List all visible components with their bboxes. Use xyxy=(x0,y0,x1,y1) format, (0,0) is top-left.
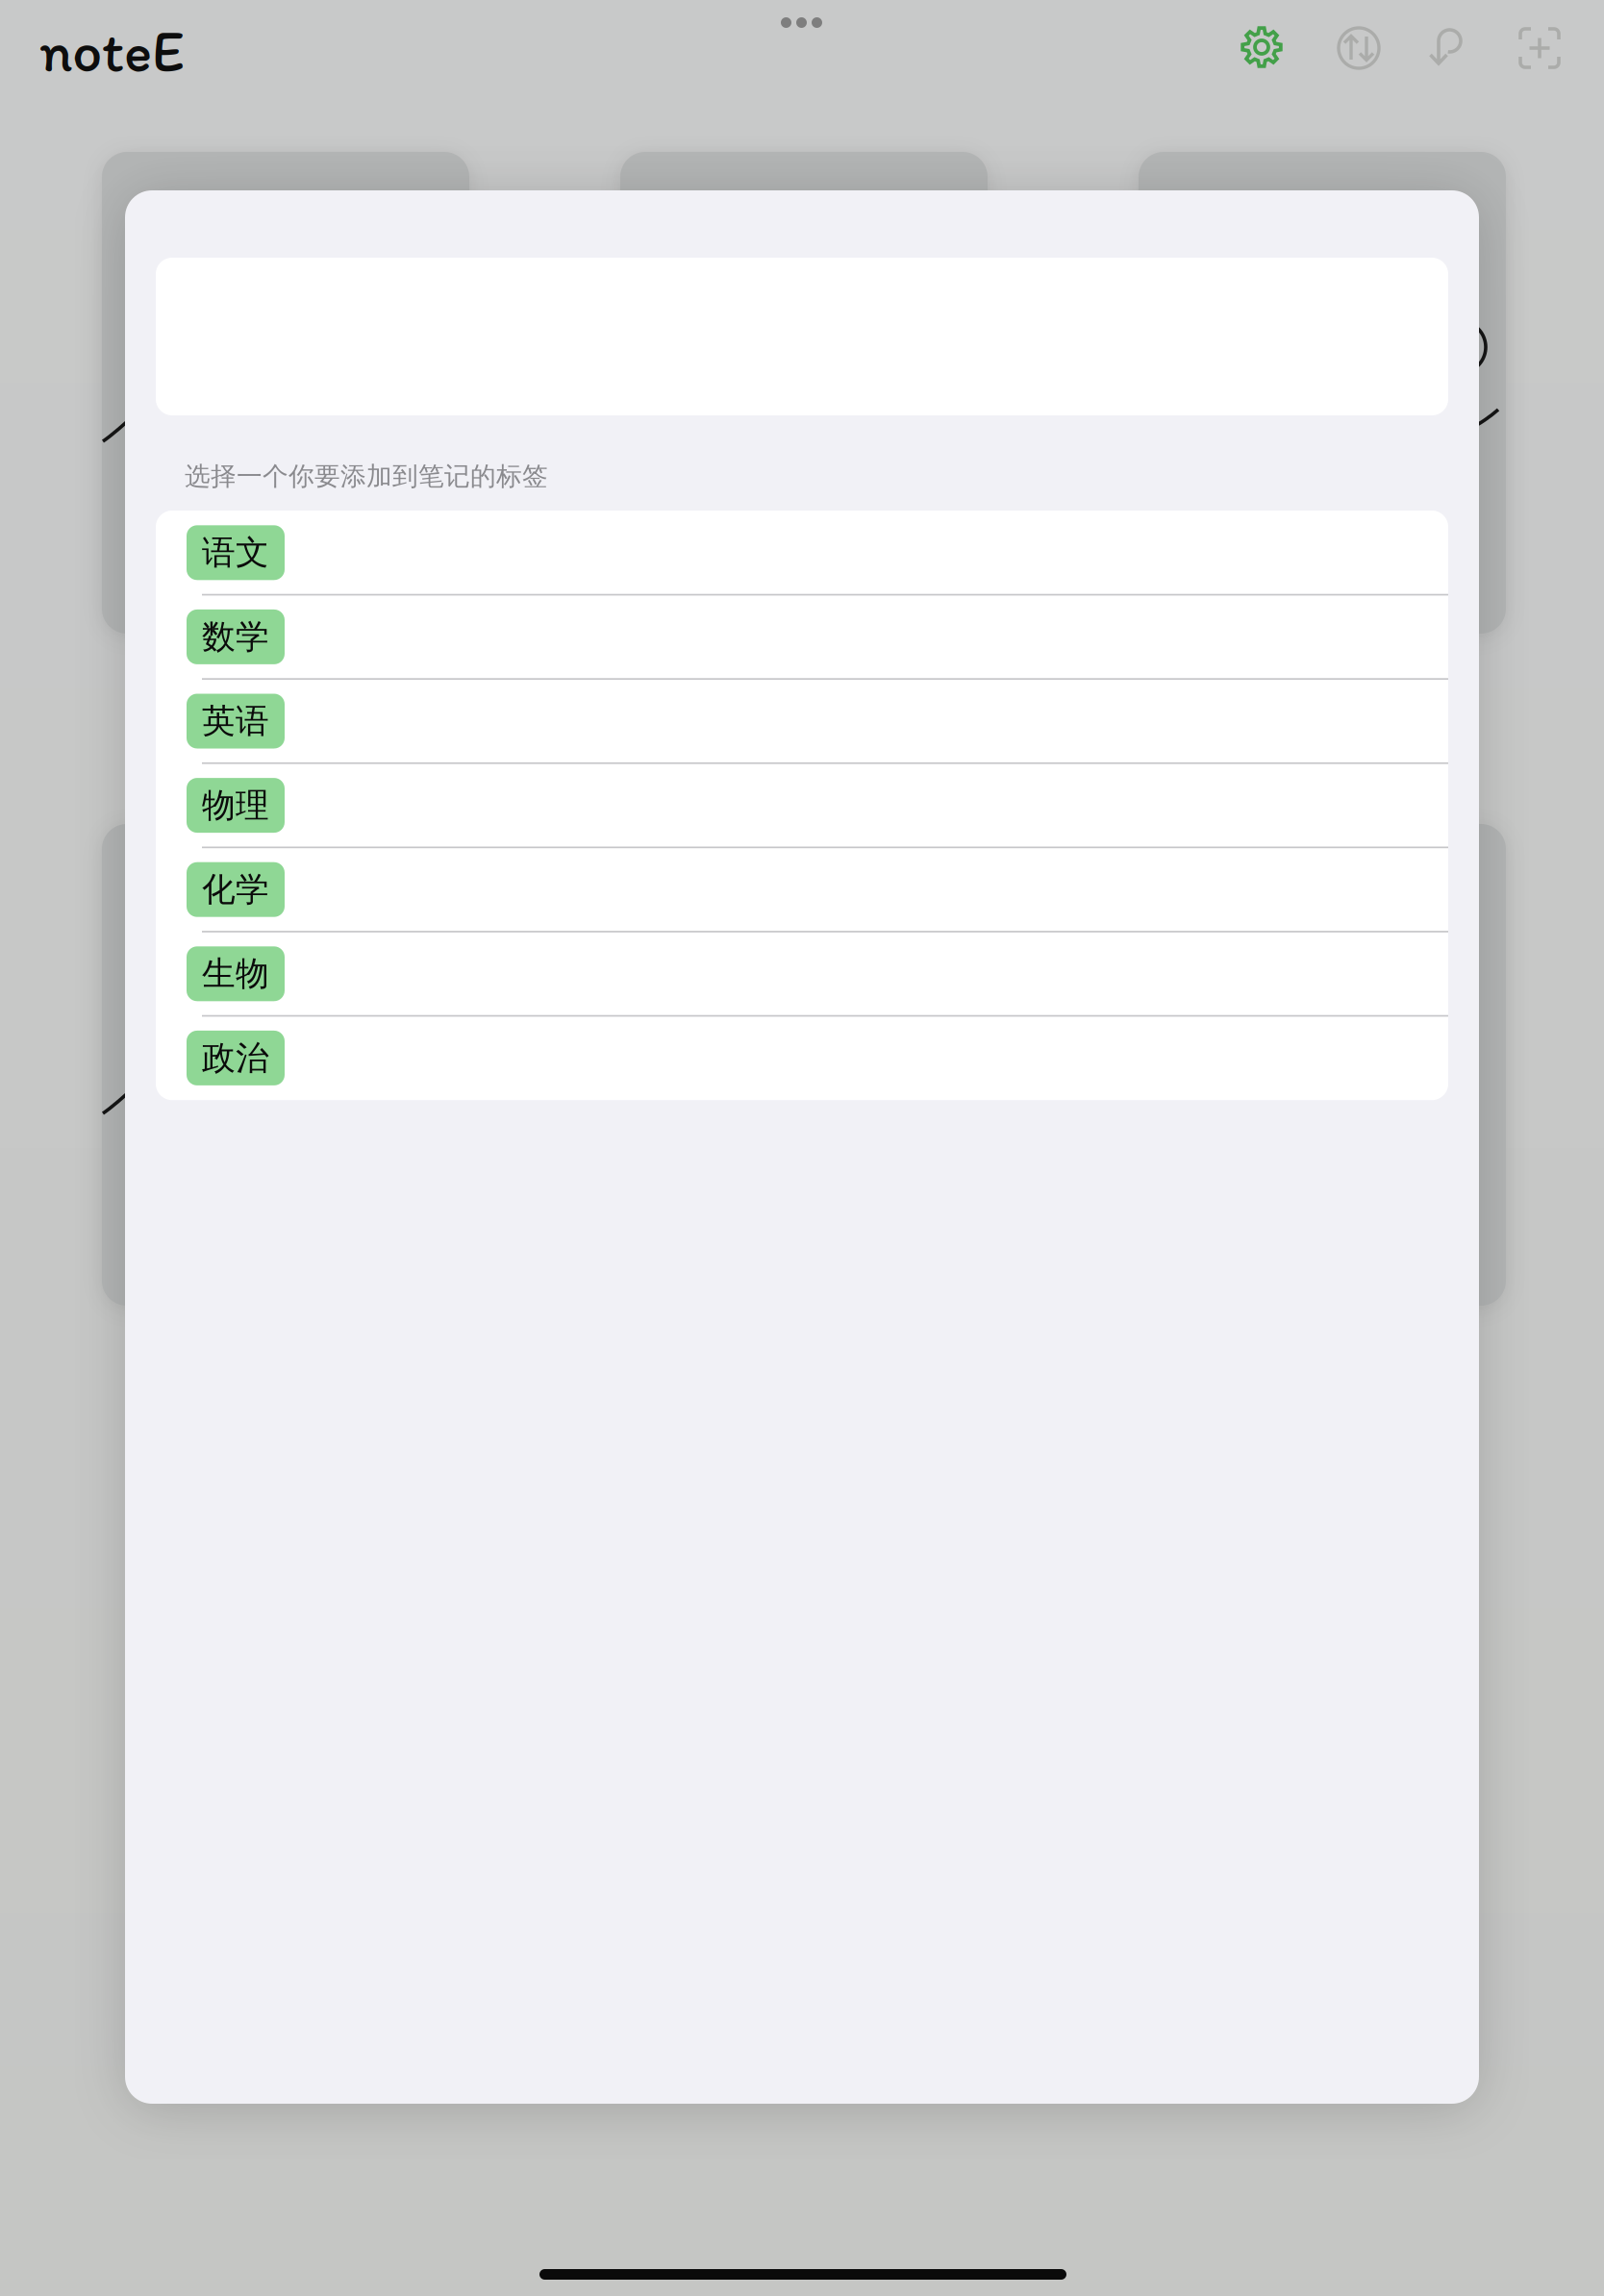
staticText: noteE xyxy=(39,15,185,86)
staticText: 选择一个你要添加到笔记的标签 xyxy=(185,461,548,492)
staticText: 物理 xyxy=(202,785,269,826)
button[interactable]: 语文 xyxy=(156,511,1448,595)
button[interactable]: 英语 xyxy=(156,679,1448,763)
button[interactable]: 政治 xyxy=(156,1016,1448,1100)
button[interactable]: Sort notes xyxy=(1328,17,1390,79)
button[interactable]: Import note xyxy=(1417,17,1479,79)
button[interactable]: 化学 xyxy=(156,847,1448,932)
button[interactable]: 物理 xyxy=(156,763,1448,847)
staticText: 生物 xyxy=(202,953,269,994)
button[interactable]: Settings xyxy=(1231,16,1292,78)
button[interactable]: 生物 xyxy=(156,932,1448,1016)
staticText: 语文 xyxy=(202,532,269,573)
staticText: 政治 xyxy=(202,1038,269,1078)
staticText: 数学 xyxy=(202,616,269,657)
button[interactable]: New note xyxy=(1509,17,1570,79)
staticText: 化学 xyxy=(202,869,269,910)
staticText: 英语 xyxy=(202,701,269,742)
button[interactable]: 数学 xyxy=(156,595,1448,679)
